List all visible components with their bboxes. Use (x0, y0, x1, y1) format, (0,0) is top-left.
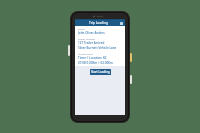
staticText: Driver (78, 27, 85, 30)
button[interactable]: Current Load (75, 51, 125, 66)
staticText: Current Load (78, 52, 93, 55)
staticText: Silver Burnett Vehicle Lane Valley (78, 46, 122, 50)
staticText: 07:08 0.00Km > 02.00Km (78, 61, 113, 65)
button[interactable]: Driver (75, 26, 125, 36)
staticText: Start Loading (91, 70, 110, 74)
staticText: Trailer Number (78, 37, 96, 40)
button[interactable]: Trailer Number (75, 36, 125, 51)
staticText: Timer / Location: 82 (78, 56, 107, 60)
button[interactable]: Start Loading (90, 69, 111, 75)
staticText: Trip Loading (89, 21, 108, 25)
staticText: John Oliver Anders (78, 31, 105, 35)
staticText: 121 Trailer Arrived (78, 41, 105, 45)
button[interactable]: More options (118, 20, 124, 26)
